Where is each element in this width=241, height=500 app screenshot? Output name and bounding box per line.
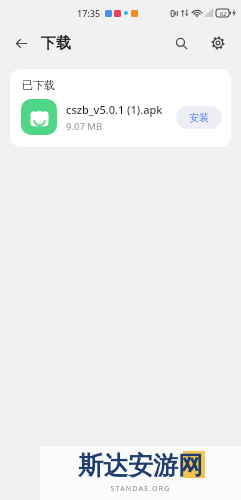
staticText: 9.07 MB [66,120,103,133]
staticText: 斯达安 [78,450,153,481]
staticText: 游 [153,450,178,481]
staticText: STANDAE.ORG [110,484,171,494]
staticText: 已下载 [22,78,55,92]
button[interactable]: Back [8,30,34,56]
staticText: 安装 [189,111,209,124]
button[interactable]: 安装 [176,106,222,129]
staticText: 网 [178,450,203,481]
staticText: 17:35 [77,7,101,19]
button[interactable]: Settings [205,30,231,56]
staticText: cszb_v5.0.1 (1).apk [66,102,163,117]
staticText: 下载 [41,34,71,53]
button[interactable]: cszb_v5.0.1 (1).apk [10,99,231,147]
staticText: 62 [220,10,227,17]
button[interactable]: Search [168,30,194,56]
